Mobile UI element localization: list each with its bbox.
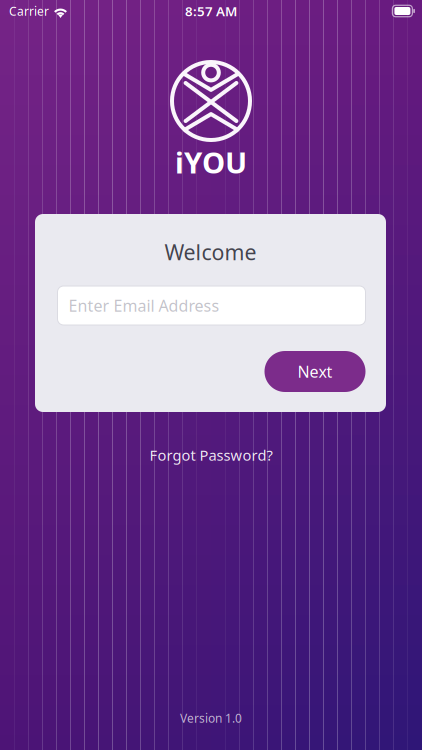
staticText: Version 1.0 [180,710,242,726]
staticText: Next [297,361,332,382]
staticText: 8:57 AM [185,2,237,20]
staticText: Forgot Password? [149,445,272,465]
staticText: Carrier [9,3,49,19]
staticText: Welcome [164,238,256,266]
button[interactable]: Forgot Password? [133,436,288,474]
button[interactable]: Next [264,351,365,392]
staticText: Enter Email Address [68,295,219,316]
staticText: iYOU [175,142,247,181]
